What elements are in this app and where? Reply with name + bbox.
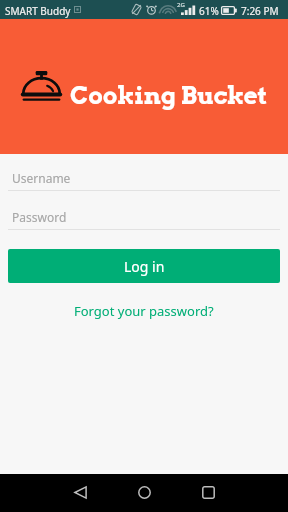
staticText: 61% [199,4,219,18]
staticText: SMART Buddy [5,4,71,18]
button[interactable]: Recent apps [176,473,240,511]
staticText: Cooking Bucket [70,81,268,110]
staticText: 7:26 PM [241,4,279,18]
button[interactable]: Forgot your password? [66,299,222,323]
staticText: Username [12,170,71,186]
button[interactable]: Back [48,473,112,511]
staticText: Log in [124,257,165,276]
staticText: 2G [177,1,185,9]
button[interactable]: Home [112,473,176,511]
button[interactable]: Log in [8,249,280,283]
staticText: Password [12,209,67,225]
